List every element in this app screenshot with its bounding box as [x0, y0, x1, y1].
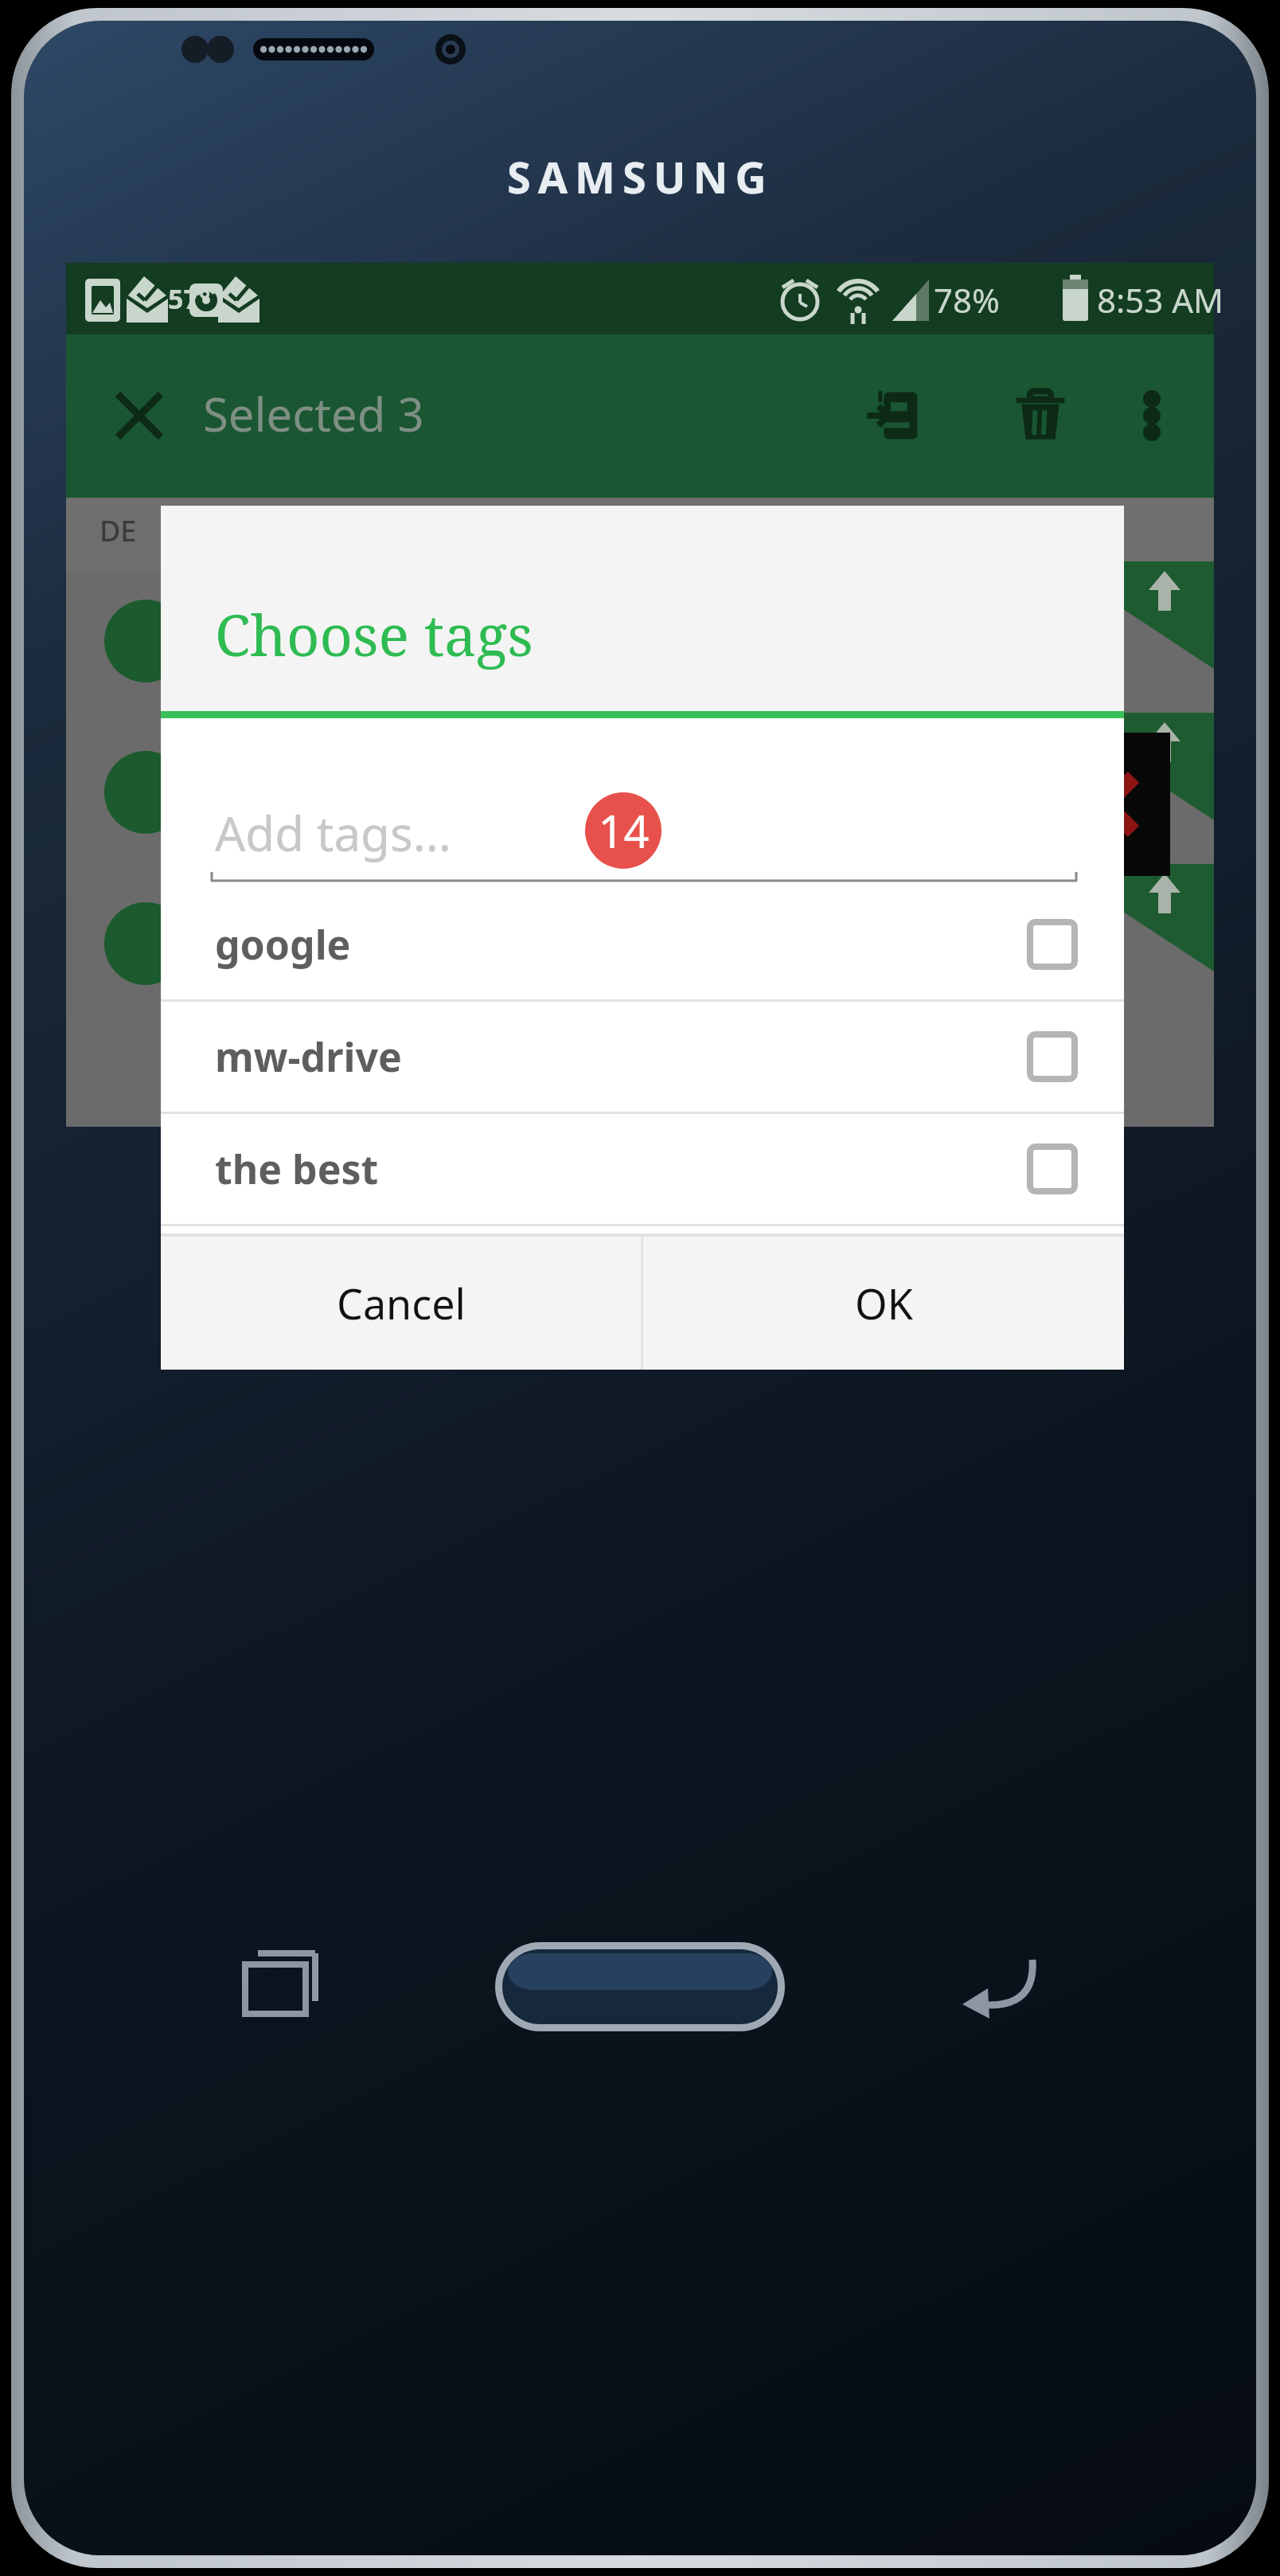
staticText: the best: [215, 1142, 379, 1196]
staticText: 14: [598, 800, 650, 861]
button[interactable]: google: [161, 889, 1124, 999]
staticText: DE: [100, 511, 137, 550]
button[interactable]: the best: [161, 1114, 1124, 1224]
button[interactable]: OK: [643, 1237, 1124, 1370]
button[interactable]: Add tags...: [161, 718, 1124, 889]
button[interactable]: 14 tags: [585, 792, 661, 869]
staticText: 78%: [934, 277, 1000, 322]
staticText: 8:53 AM: [1097, 277, 1224, 322]
staticText: 57°: [168, 280, 211, 317]
staticText: Add tags...: [215, 800, 451, 866]
button[interactable]: Cancel: [161, 1237, 641, 1370]
button[interactable]: Move to folder: [843, 365, 945, 467]
staticText: Cancel: [337, 1275, 466, 1331]
staticText: SAMSUNG: [507, 147, 774, 206]
button[interactable]: Delete: [989, 365, 1091, 467]
button[interactable]: mw-drive: [161, 1002, 1124, 1112]
staticText: mw-drive: [215, 1030, 402, 1084]
staticText: google: [215, 917, 351, 971]
button[interactable]: More options: [1101, 365, 1203, 467]
staticText: Selected 3: [203, 382, 424, 445]
staticText: OK: [855, 1275, 913, 1331]
button[interactable]: Close selection: [90, 366, 189, 465]
staticText: Choose tags: [215, 595, 533, 673]
